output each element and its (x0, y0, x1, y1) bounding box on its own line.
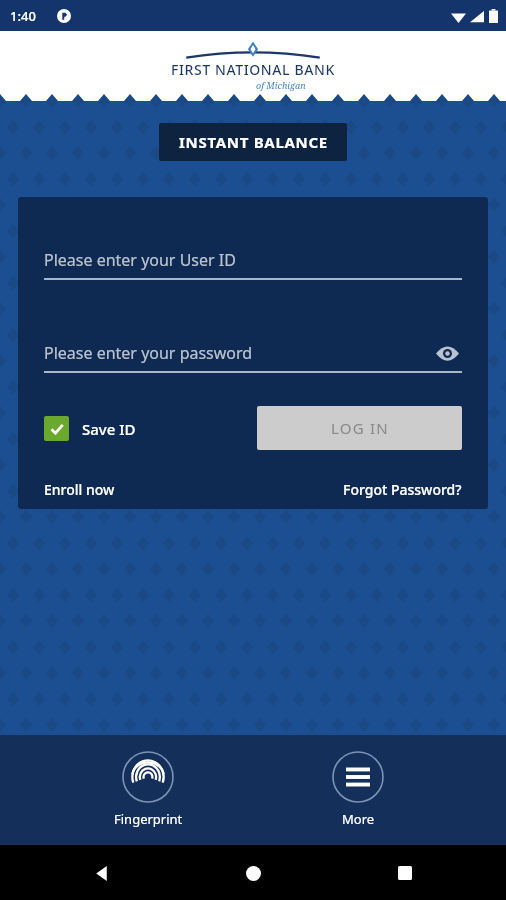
button[interactable]: Home (236, 856, 270, 890)
button[interactable]: Enroll now (44, 480, 115, 499)
button[interactable]: Recent apps (388, 856, 422, 890)
button[interactable]: LOG IN (257, 406, 462, 450)
button[interactable]: Please enter your password (44, 337, 462, 369)
button[interactable]: Save ID (44, 416, 136, 441)
button[interactable]: Fingerprint login (102, 749, 194, 830)
other: Fingerprint login (122, 751, 174, 803)
staticText: Please enter your User ID (44, 249, 236, 271)
staticText: 1:40 (10, 7, 36, 25)
button[interactable]: Show password (432, 338, 462, 368)
staticText: INSTANT BALANCE (179, 132, 328, 152)
staticText: FIRST NATIONAL BANK (171, 60, 335, 79)
other: More options (332, 751, 384, 803)
button[interactable]: Please enter your User ID (44, 244, 462, 276)
staticText: Forgot Password? (343, 480, 462, 499)
button[interactable]: Back (84, 856, 118, 890)
button[interactable]: More options (312, 749, 404, 830)
staticText: of Michigan (256, 79, 306, 91)
button[interactable]: Forgot Password? (343, 480, 462, 499)
staticText: Enroll now (44, 480, 115, 499)
staticText: Fingerprint (114, 810, 183, 828)
button[interactable]: INSTANT BALANCE (159, 123, 347, 161)
staticText: Save ID (82, 419, 136, 439)
staticText: More (342, 810, 375, 828)
staticText: LOG IN (331, 418, 389, 438)
staticText: Please enter your password (44, 342, 253, 364)
